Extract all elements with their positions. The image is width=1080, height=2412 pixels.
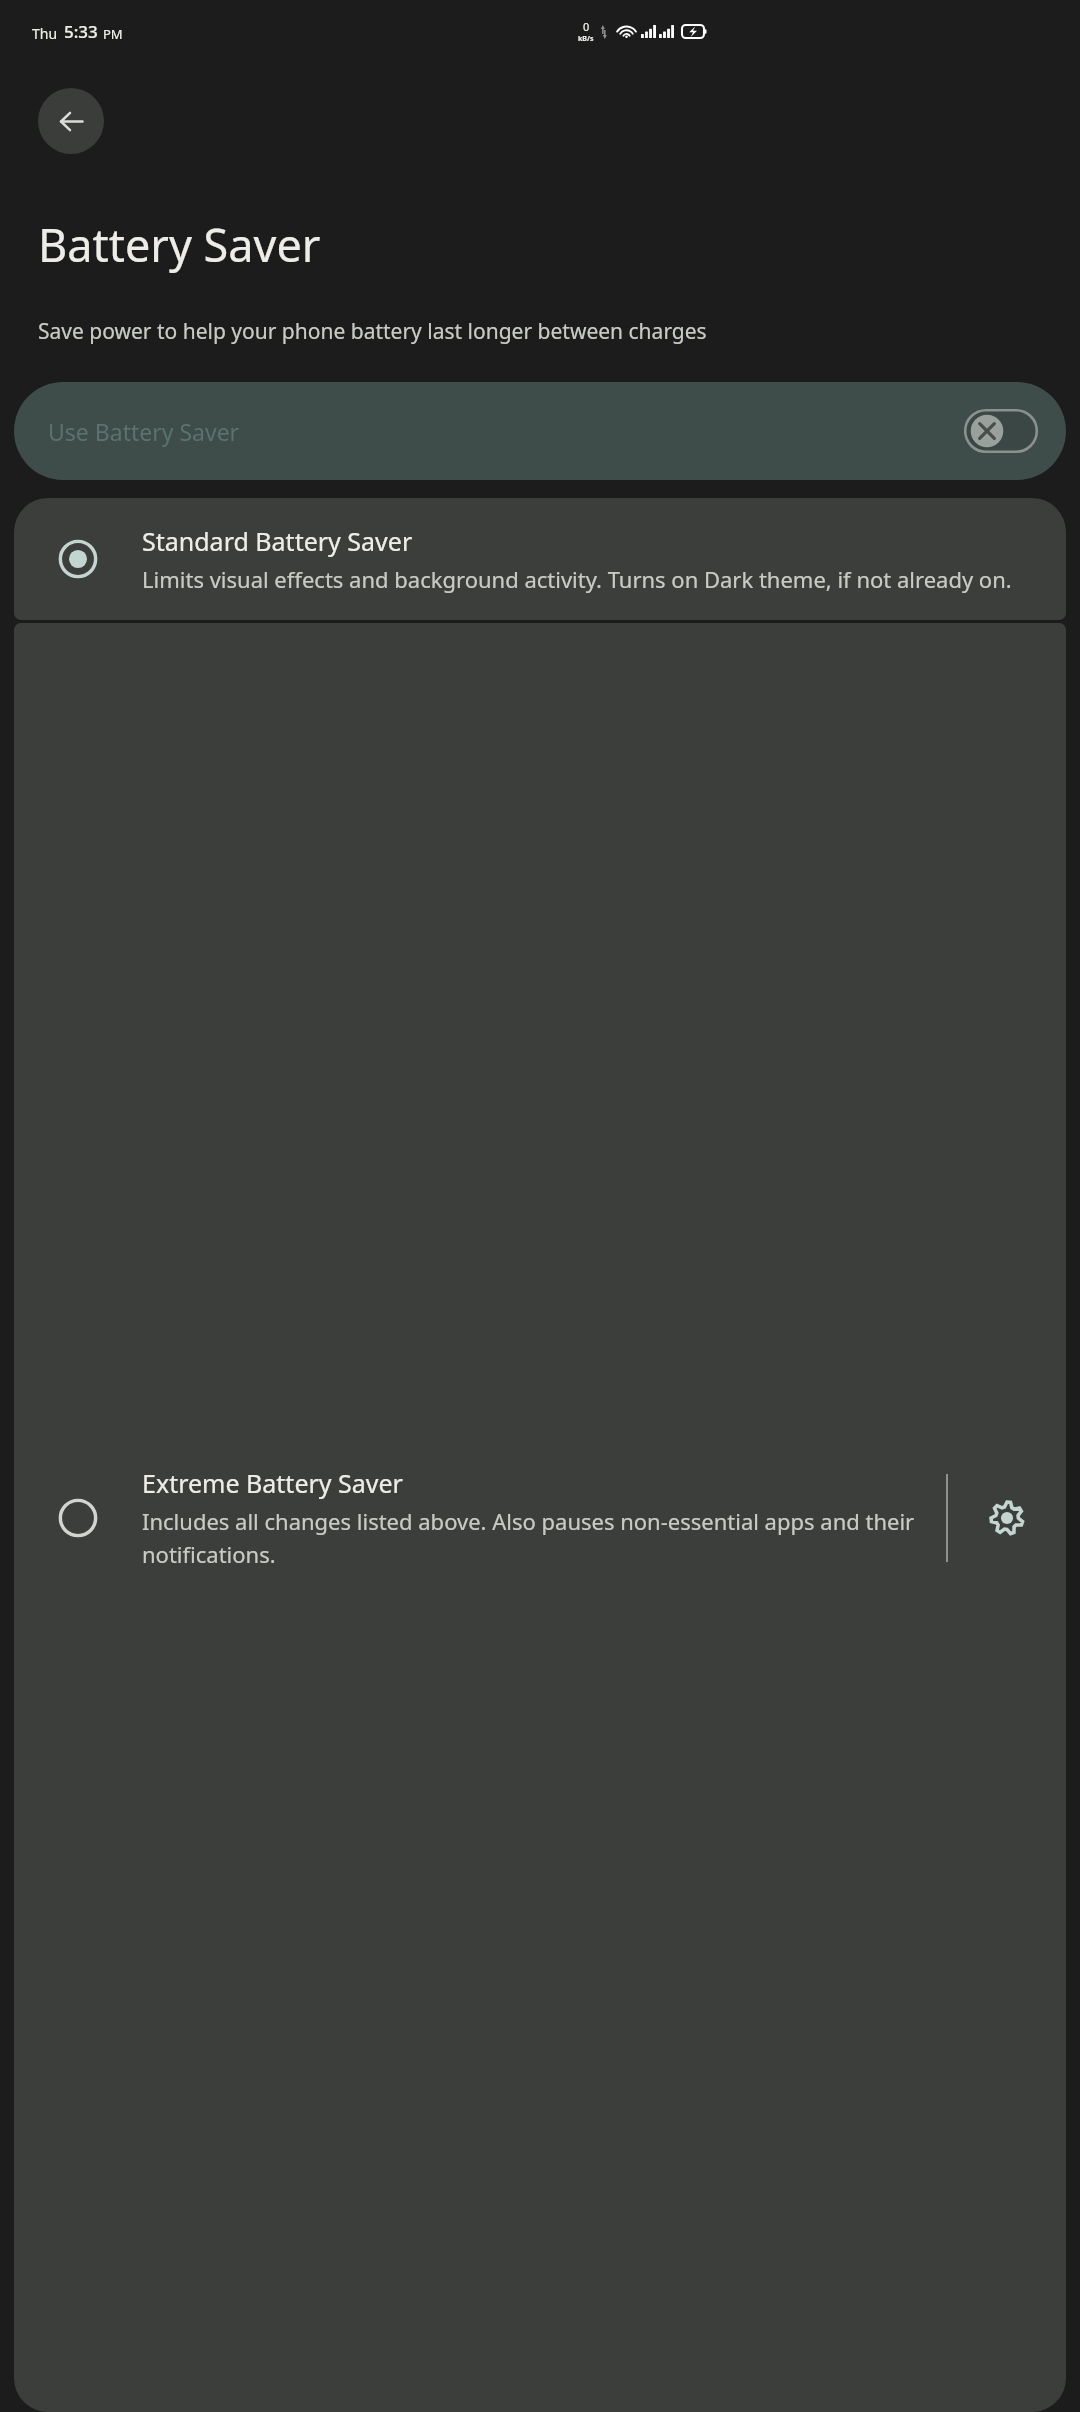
staticText: Standard Battery Saver — [142, 524, 413, 558]
staticText: 0 — [583, 19, 590, 34]
staticText: PM — [103, 25, 123, 43]
button[interactable]: Extreme Battery Saver — [14, 1466, 946, 1569]
staticText: 5:33 — [64, 20, 98, 43]
button[interactable]: Extreme Battery Saver settings — [948, 649, 1066, 2386]
staticText: Save power to help your phone battery la… — [38, 317, 707, 346]
button[interactable]: Back — [38, 88, 104, 154]
staticText: Thu — [32, 24, 58, 43]
button[interactable]: Use Battery Saver — [14, 382, 1066, 480]
staticText: Limits visual effects and background act… — [142, 564, 1012, 594]
button[interactable]: Standard Battery Saver — [14, 498, 1066, 620]
staticText: Battery Saver — [38, 214, 321, 275]
staticText: Includes all changes listed above. Also … — [142, 1506, 932, 1569]
staticText: kB/s — [578, 34, 594, 44]
staticText: Use Battery Saver — [48, 416, 240, 447]
staticText: Extreme Battery Saver — [142, 1466, 403, 1500]
